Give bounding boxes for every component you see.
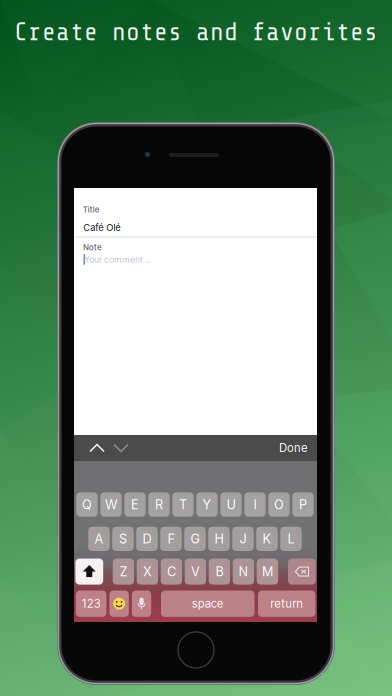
button[interactable]: T [172, 492, 194, 517]
staticText: G [190, 531, 199, 546]
staticText: M [262, 564, 273, 579]
staticText: Q [82, 497, 92, 512]
button[interactable]: W [100, 492, 122, 517]
staticText: J [239, 531, 246, 546]
button[interactable]: M [257, 558, 278, 585]
button[interactable]: H [208, 527, 230, 551]
button[interactable]: B [209, 558, 230, 585]
button[interactable]: 123 [76, 590, 106, 617]
staticText: R [155, 497, 163, 512]
button[interactable]: Next field [109, 435, 133, 461]
staticText: K [262, 531, 271, 546]
button[interactable]: X [137, 558, 158, 585]
staticText: T [179, 497, 187, 512]
staticText: Z [119, 564, 127, 579]
staticText: L [287, 531, 294, 546]
button[interactable]: U [220, 492, 242, 517]
staticText: space [192, 597, 224, 610]
button[interactable]: Shift [75, 558, 103, 585]
button[interactable]: D [136, 527, 158, 551]
staticText: D [142, 531, 151, 546]
staticText: Note [83, 242, 102, 252]
button[interactable]: Previous field [85, 435, 109, 461]
staticText: I [253, 497, 256, 512]
button[interactable]: A [88, 527, 110, 551]
staticText: C [167, 564, 176, 579]
staticText: Done [279, 441, 308, 455]
button[interactable]: return [258, 590, 315, 617]
button[interactable]: C [161, 558, 182, 585]
button[interactable]: I [244, 492, 266, 517]
staticText: E [131, 497, 139, 512]
button[interactable]: Z [113, 558, 134, 585]
staticText: return [270, 597, 303, 610]
staticText: B [215, 564, 223, 579]
button[interactable]: P [292, 492, 314, 517]
staticText: Y [202, 497, 211, 512]
button[interactable]: L [280, 527, 302, 551]
button[interactable]: J [232, 527, 254, 551]
staticText: W [105, 497, 117, 512]
button[interactable]: Y [196, 492, 218, 517]
button[interactable]: Emoji [109, 590, 129, 617]
staticText: S [119, 531, 127, 546]
button[interactable]: S [112, 527, 134, 551]
button[interactable]: V [185, 558, 206, 585]
button[interactable]: F [160, 527, 182, 551]
staticText: F [167, 531, 174, 546]
staticText: V [191, 564, 200, 579]
button[interactable]: K [256, 527, 278, 551]
staticText: Create notes and favorites [14, 18, 378, 46]
staticText: Title [83, 205, 100, 215]
staticText: P [299, 497, 307, 512]
button[interactable]: N [233, 558, 254, 585]
button[interactable]: Delete [288, 558, 316, 585]
button[interactable]: Q [76, 492, 98, 517]
button[interactable]: E [124, 492, 146, 517]
staticText: N [238, 564, 248, 579]
staticText: Your comment ... [84, 254, 151, 265]
staticText: H [214, 531, 223, 546]
staticText: 123 [82, 597, 101, 610]
staticText: Café Olé [83, 222, 120, 233]
button[interactable]: space [161, 590, 254, 617]
staticText: U [226, 497, 235, 512]
staticText: O [274, 497, 284, 512]
staticText: A [94, 531, 103, 546]
button[interactable]: R [148, 492, 170, 517]
button[interactable]: Done [272, 435, 308, 461]
button[interactable]: O [268, 492, 290, 517]
button[interactable]: G [184, 527, 206, 551]
button[interactable]: Dictate [132, 590, 151, 617]
staticText: X [143, 564, 152, 579]
